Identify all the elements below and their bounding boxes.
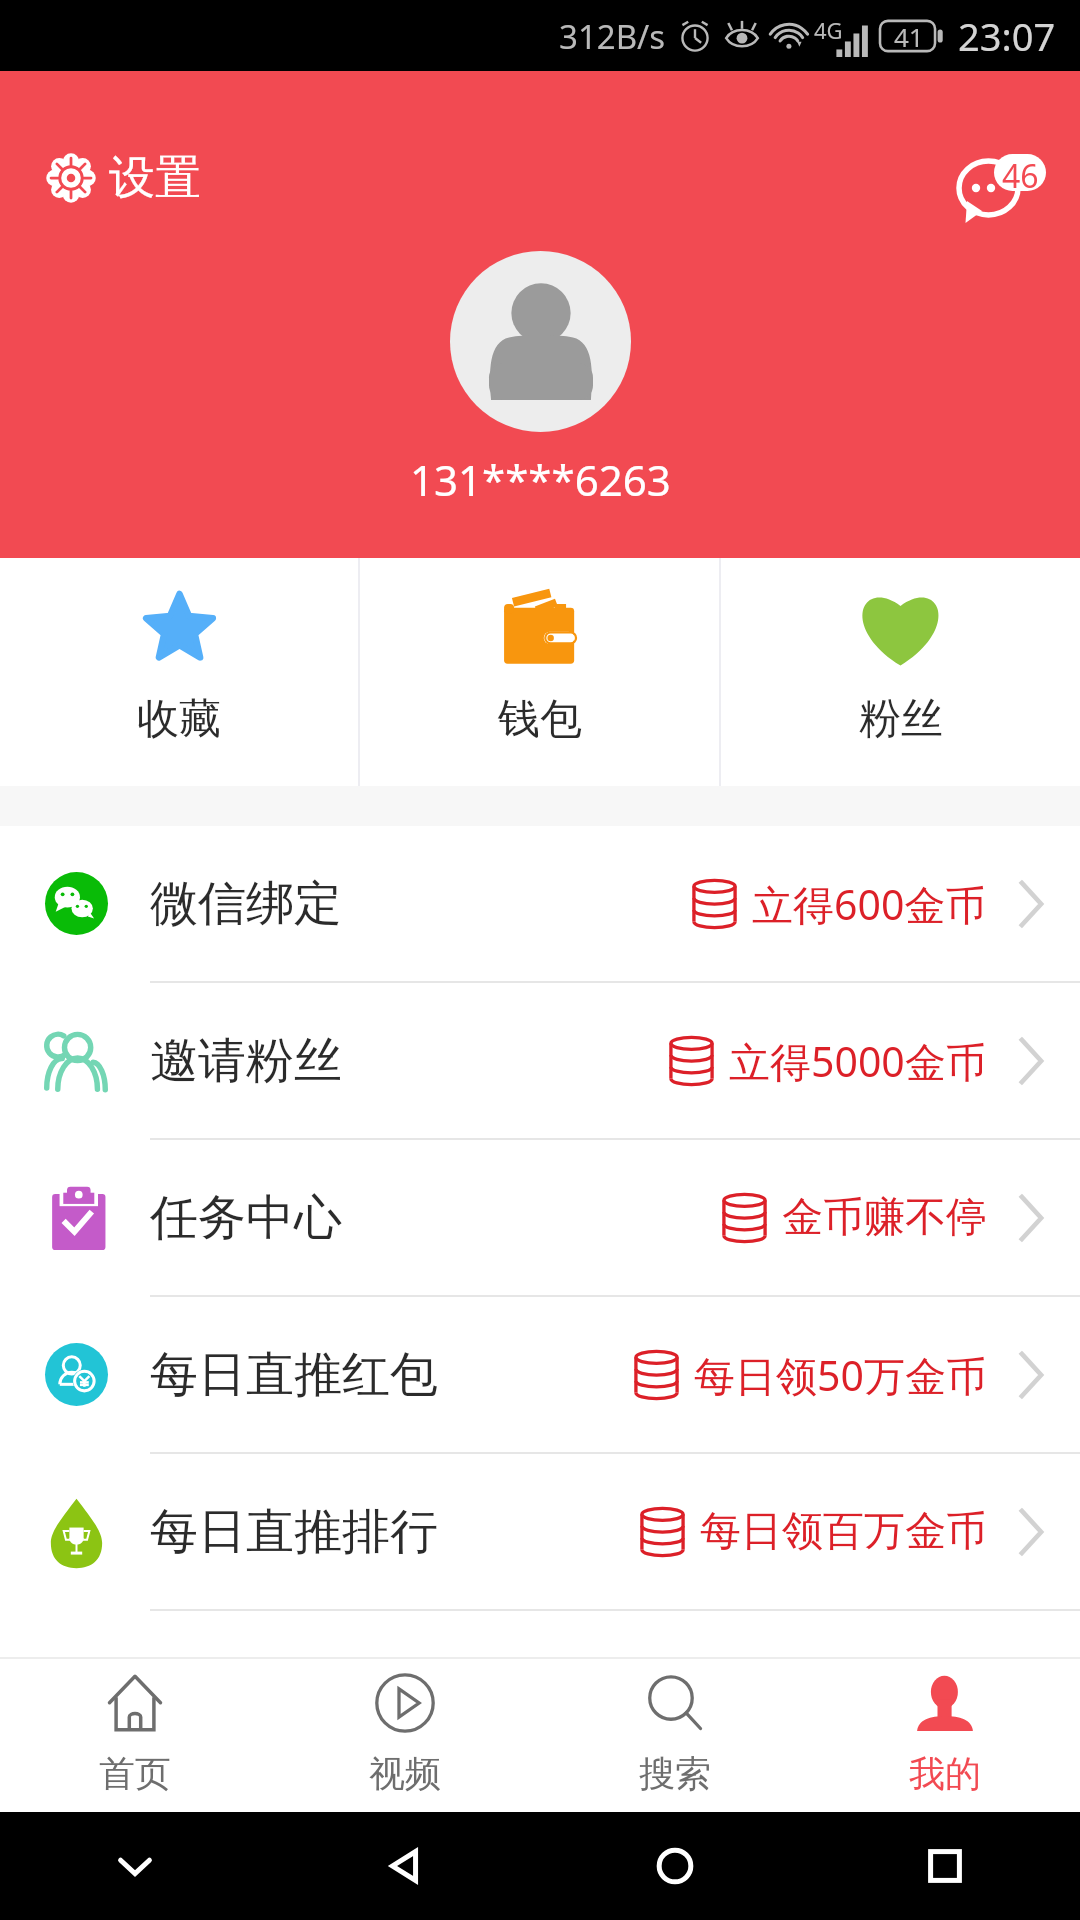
- staticText: 立得5000金币: [729, 1033, 987, 1089]
- staticText: 4G: [814, 15, 843, 45]
- staticText: 搜索: [639, 1751, 711, 1796]
- button[interactable]: 每日直推排行: [0, 1454, 1080, 1609]
- staticText: 设置: [109, 149, 201, 207]
- staticText: 23:07: [958, 10, 1056, 62]
- staticText: 46: [1002, 154, 1039, 191]
- staticText: 邀请粉丝: [150, 1031, 342, 1091]
- staticText: 每日直推红包: [150, 1345, 438, 1405]
- staticText: 视频: [369, 1751, 441, 1796]
- staticText: 每日领50万金币: [694, 1347, 987, 1403]
- button[interactable]: 粉丝: [721, 558, 1080, 786]
- button[interactable]: 任务中心: [0, 1140, 1080, 1295]
- button[interactable]: 首页: [0, 1657, 270, 1812]
- staticText: 任务中心: [150, 1188, 342, 1248]
- staticText: 131****6263: [410, 451, 671, 508]
- button[interactable]: 邀请粉丝: [0, 983, 1080, 1138]
- button[interactable]: 我的: [810, 1657, 1080, 1812]
- staticText: 每日直推排行: [150, 1502, 438, 1562]
- button[interactable]: 设置: [38, 143, 209, 213]
- staticText: 微信绑定: [150, 874, 342, 934]
- staticText: 金币赚不停: [782, 1192, 987, 1244]
- button[interactable]: 每日直推红包: [0, 1297, 1080, 1452]
- button[interactable]: 视频: [270, 1657, 540, 1812]
- button[interactable]: 搜索: [540, 1657, 810, 1812]
- staticText: 立得600金币: [752, 876, 987, 932]
- staticText: 我的: [909, 1751, 981, 1796]
- staticText: 41: [894, 19, 924, 54]
- staticText: 312B/s: [559, 14, 666, 59]
- staticText: 每日领百万金币: [700, 1506, 987, 1558]
- staticText: 钱包: [498, 693, 582, 746]
- button[interactable]: 收藏: [0, 558, 358, 786]
- staticText: 首页: [99, 1751, 171, 1796]
- staticText: 收藏: [137, 693, 221, 746]
- button[interactable]: 微信绑定: [0, 826, 1080, 981]
- staticText: 粉丝: [859, 693, 943, 746]
- button[interactable]: 钱包: [360, 558, 719, 786]
- button[interactable]: Messages: [950, 153, 1050, 231]
